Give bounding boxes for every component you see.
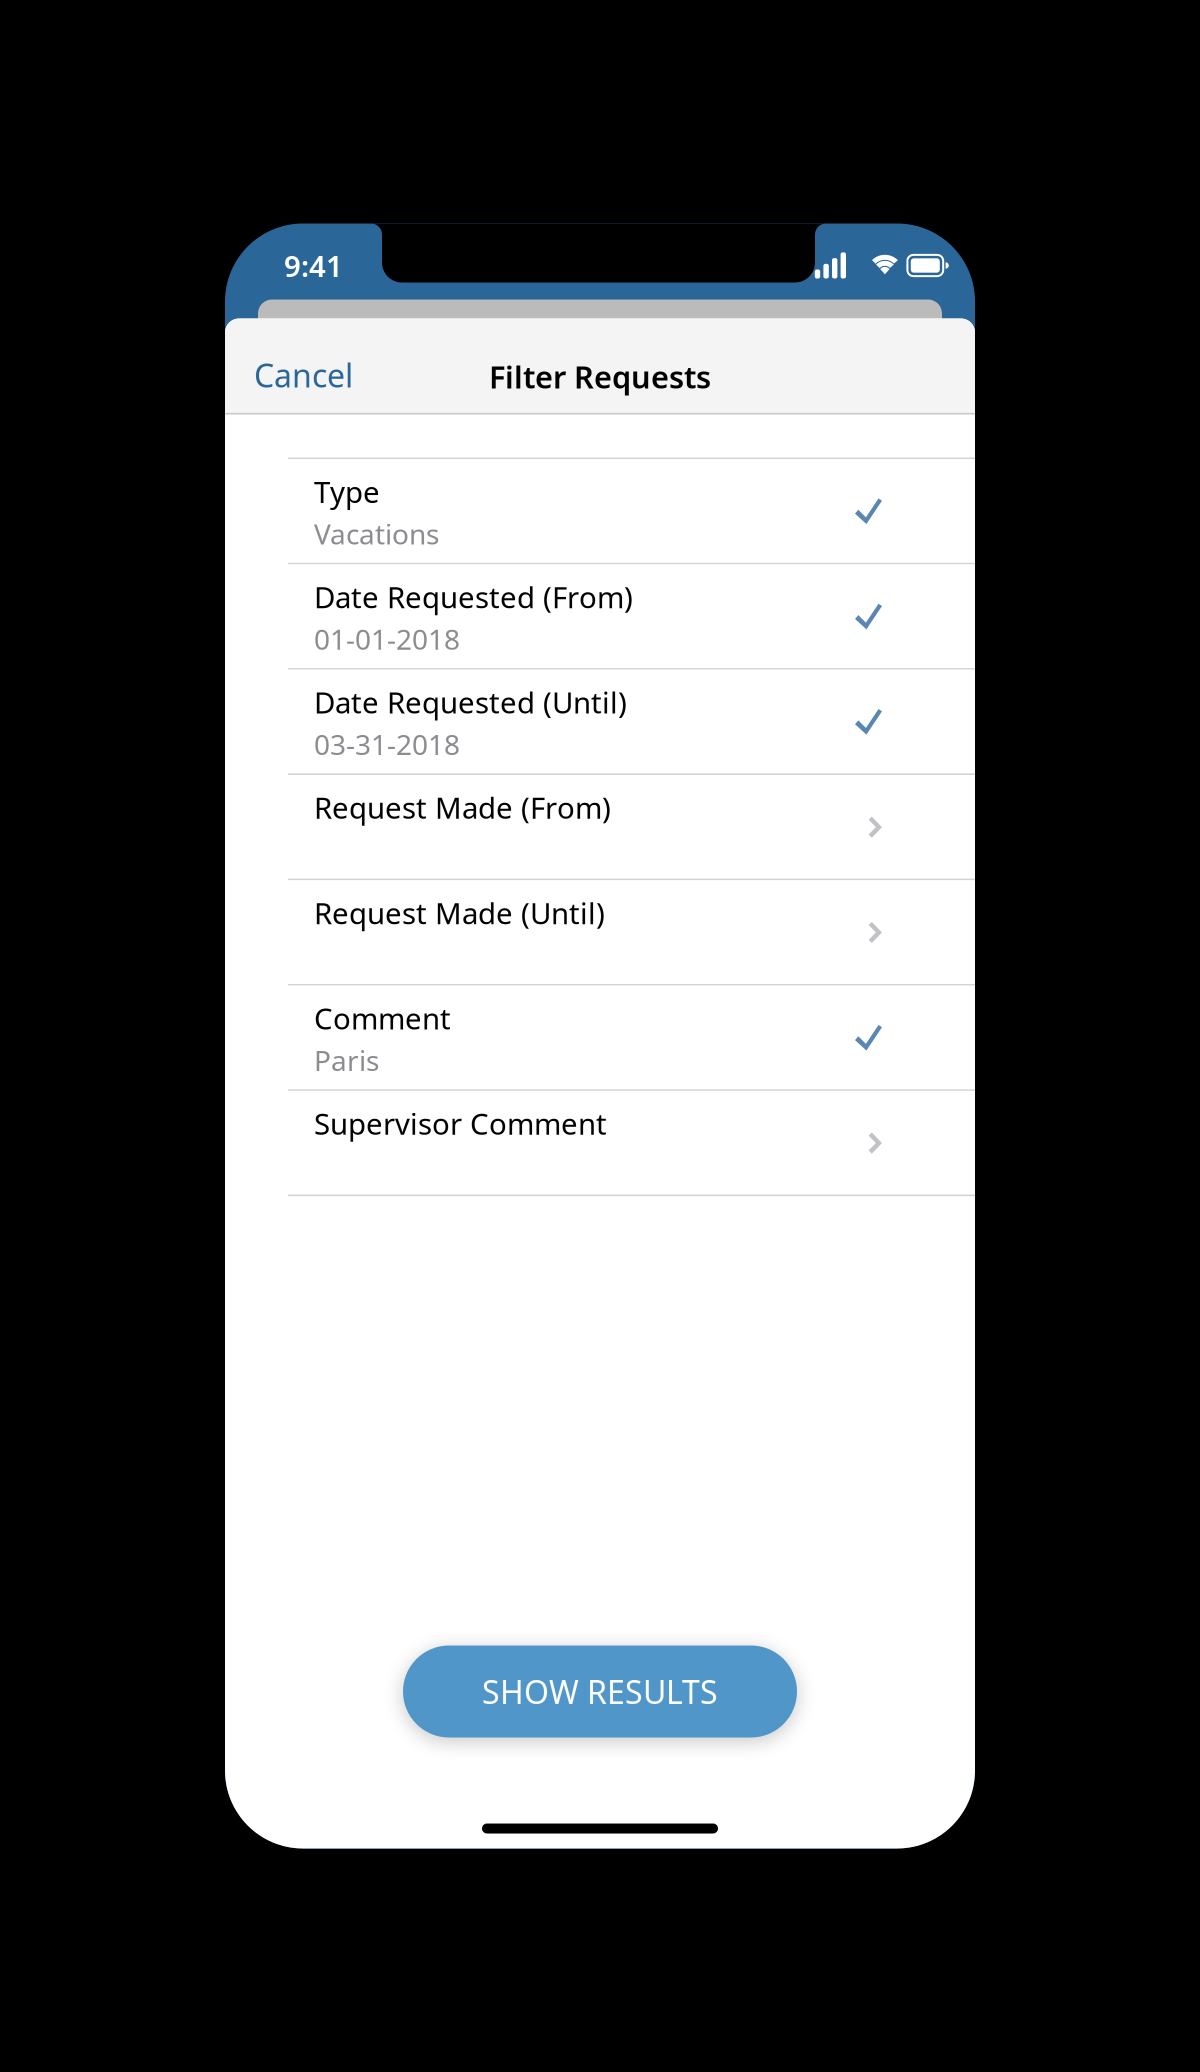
button[interactable]: Comment — [225, 986, 975, 1091]
staticText: 03-31-2018 — [314, 726, 460, 763]
button[interactable]: Supervisor Comment — [225, 1091, 975, 1196]
staticText: Vacations — [314, 515, 439, 552]
button[interactable]: Request Made (Until) — [225, 880, 975, 986]
button[interactable]: Date Requested (Until) — [225, 670, 975, 775]
staticText: Supervisor Comment — [314, 1104, 607, 1143]
staticText: 9:41 — [284, 246, 343, 285]
staticText: 01-01-2018 — [314, 620, 460, 658]
button[interactable]: Request Made (From) — [225, 775, 975, 880]
button[interactable]: Date Requested (From) — [225, 564, 975, 670]
button[interactable]: Type — [225, 459, 975, 564]
staticText: Request Made (From) — [314, 788, 611, 827]
staticText: Type — [314, 472, 380, 511]
staticText: Paris — [314, 1042, 379, 1079]
staticText: Cancel — [254, 354, 353, 396]
staticText: Request Made (Until) — [314, 893, 605, 932]
staticText: Filter Requests — [489, 356, 711, 397]
staticText: SHOW RESULTS — [482, 1670, 718, 1713]
button[interactable]: SHOW RESULTS — [403, 1645, 797, 1737]
button[interactable]: Cancel — [225, 322, 371, 411]
staticText: Comment — [314, 999, 451, 1038]
staticText: Date Requested (Until) — [314, 683, 627, 722]
staticText: Date Requested (From) — [314, 577, 633, 616]
